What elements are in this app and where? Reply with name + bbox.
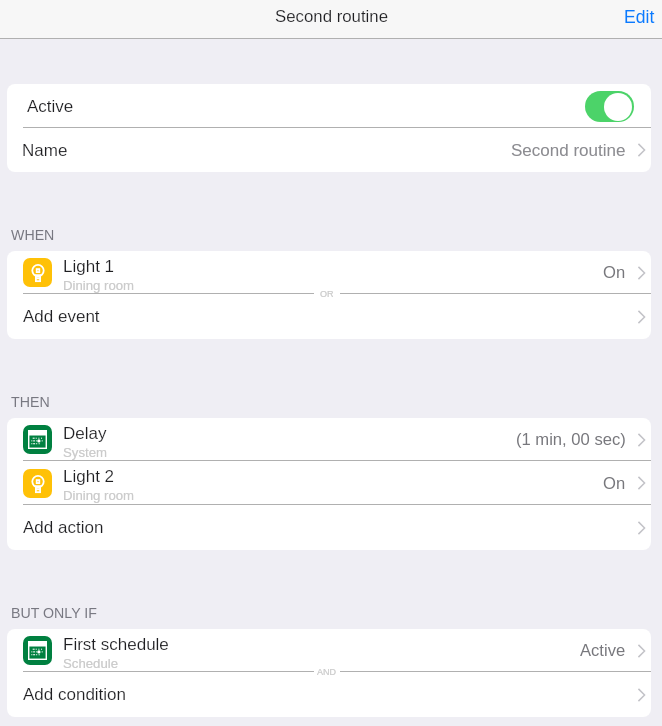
staticText: (1 min, 00 sec)	[516, 430, 626, 449]
button[interactable]: Active toggle	[585, 91, 634, 122]
staticText: Add condition	[23, 685, 127, 704]
staticText: System	[63, 445, 107, 460]
staticText: Light 1	[63, 257, 115, 276]
staticText: Dining room	[63, 488, 135, 503]
staticText: Add event	[23, 307, 100, 326]
staticText: Active	[27, 97, 74, 116]
staticText: Light 2	[63, 467, 115, 486]
staticText: Add action	[23, 518, 104, 537]
staticText: Active	[580, 641, 626, 660]
staticText: Second routine	[511, 141, 626, 160]
staticText: Second routine	[275, 7, 388, 26]
button[interactable]: Edit	[610, 1, 662, 33]
button[interactable]: First schedule	[7, 629, 651, 672]
staticText: OR	[320, 289, 334, 299]
staticText: On	[603, 263, 626, 282]
button[interactable]: Name	[7, 128, 651, 172]
staticText: Edit	[624, 7, 655, 27]
button[interactable]: Active	[7, 84, 651, 128]
staticText: First schedule	[63, 635, 169, 654]
staticText: WHEN	[11, 227, 55, 243]
staticText: Delay	[63, 424, 107, 443]
staticText: Name	[22, 141, 68, 160]
button[interactable]: Light 2	[7, 461, 651, 505]
staticText: THEN	[11, 394, 50, 410]
staticText: On	[603, 474, 626, 493]
staticText: Schedule	[63, 656, 118, 671]
button[interactable]: Light 1	[7, 251, 651, 294]
staticText: BUT ONLY IF	[11, 605, 97, 621]
button[interactable]: Add event	[7, 294, 651, 339]
button[interactable]: Delay	[7, 418, 651, 461]
button[interactable]: Add action	[7, 505, 651, 550]
button[interactable]: Add condition	[7, 672, 651, 717]
staticText: Dining room	[63, 278, 135, 293]
staticText: AND	[317, 667, 337, 677]
